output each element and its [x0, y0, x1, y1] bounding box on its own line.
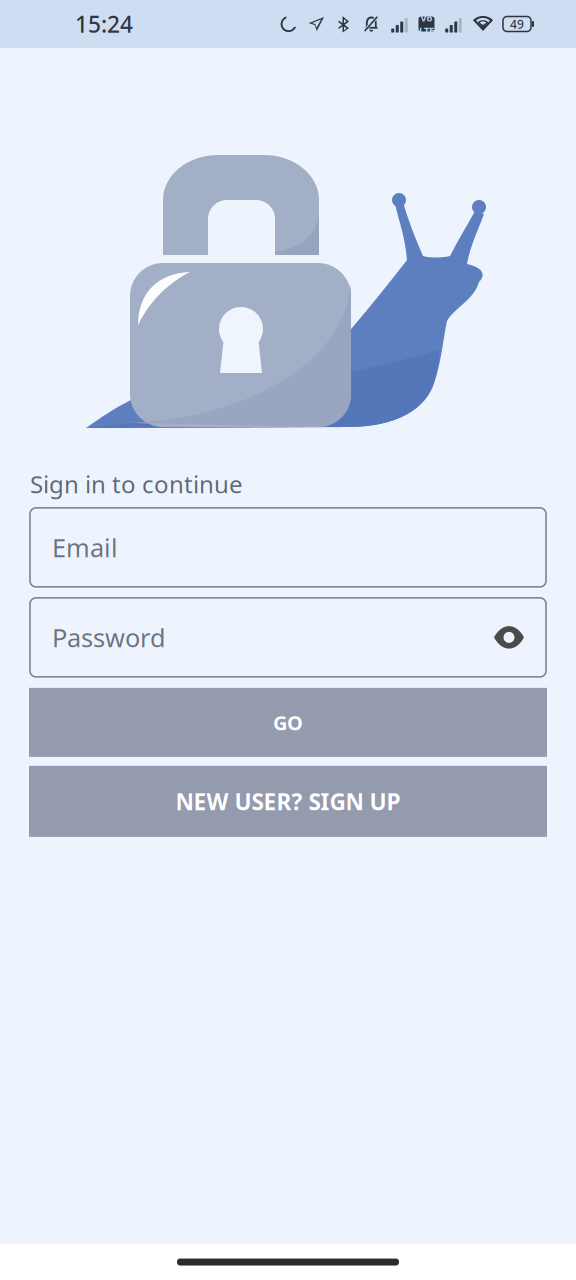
staticText: 49 — [510, 16, 524, 32]
staticText: Sign in to continue — [30, 468, 243, 500]
button[interactable]: NEW USER? SIGN UP — [29, 766, 547, 837]
staticText: NEW USER? SIGN UP — [175, 786, 400, 816]
staticText: LTE — [419, 24, 434, 36]
staticText: GO — [273, 709, 303, 736]
button[interactable]: Email — [30, 508, 546, 587]
staticText: Email — [52, 531, 118, 564]
staticText: 15:24 — [75, 9, 133, 39]
staticText: Vo — [420, 12, 432, 24]
staticText: Password — [52, 621, 166, 654]
button[interactable]: Password — [30, 598, 546, 677]
button[interactable]: GO — [29, 688, 547, 757]
